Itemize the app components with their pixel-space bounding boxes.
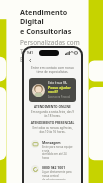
staticText: Ligue diretamente para bbox=[42, 170, 72, 174]
staticText: Esta é sua PA. bbox=[48, 81, 68, 85]
button[interactable]: 0800 942 1001 bbox=[29, 163, 76, 182]
button[interactable]: Mensagem bbox=[29, 138, 76, 161]
staticText: Entre em contato com nosso time de espec… bbox=[30, 66, 75, 74]
staticText: 0800 942 1001 bbox=[42, 165, 66, 170]
staticText: Mensagem bbox=[42, 140, 61, 145]
staticText: ATENDIMENTO PRESENCIAL bbox=[30, 121, 75, 125]
staticText: Assessora Pessoal bbox=[48, 95, 71, 99]
staticText: e Consultorias bbox=[20, 26, 72, 36]
staticText: Envie para nossa equipe e seja bbox=[42, 145, 74, 152]
button[interactable]: Voltar bbox=[28, 58, 33, 63]
staticText: atendido em até 24 horas bbox=[42, 152, 74, 159]
staticText: nossa central bbox=[42, 174, 59, 178]
staticText: Posso ajudar você? bbox=[48, 85, 73, 95]
staticText: Time de Especialistas bbox=[20, 47, 83, 64]
button[interactable]: Esta é sua PA. bbox=[29, 78, 76, 102]
staticText: Em segunda a sexta-feira, das 9 às 18 ho… bbox=[30, 110, 75, 118]
staticText: ATENDIMENTO ONLINE bbox=[30, 105, 75, 109]
staticText: Atendimento Digital bbox=[20, 7, 83, 26]
staticText: Personalizadas com bbox=[20, 38, 80, 47]
staticText: de relacionamento bbox=[42, 178, 66, 180]
staticText: 9:41 bbox=[27, 51, 33, 55]
staticText: Em todas as nossas agências, das 10 às 1… bbox=[30, 126, 75, 134]
